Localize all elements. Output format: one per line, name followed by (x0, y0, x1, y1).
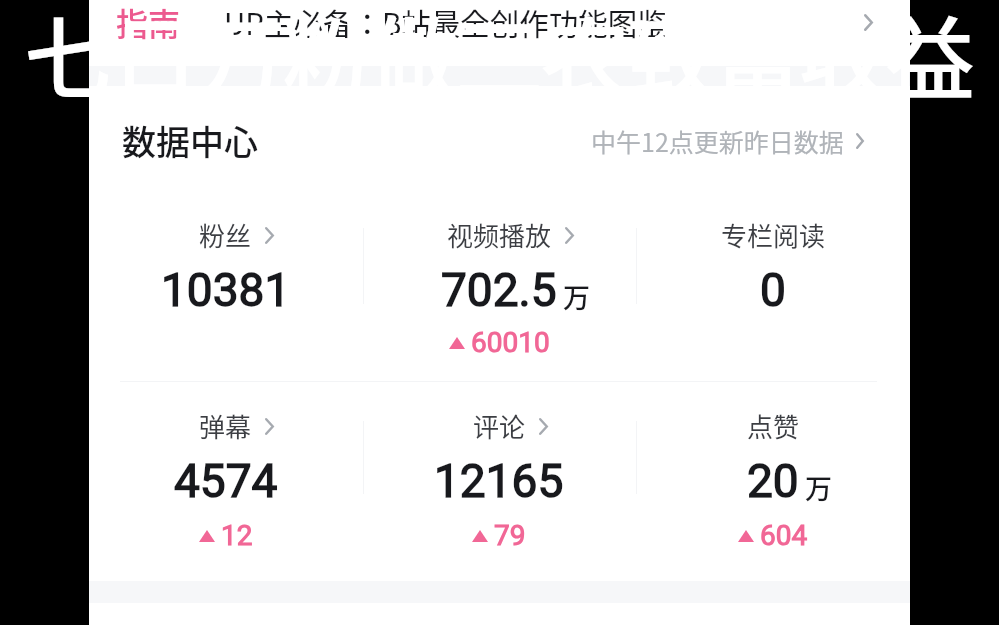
button[interactable]: 评论 (362, 386, 636, 585)
staticText: 12 (221, 519, 253, 552)
button[interactable]: 弹幕 (89, 386, 362, 585)
staticText: 702.5 (441, 263, 557, 317)
staticText: 60010 (471, 326, 550, 359)
staticText: 4574 (174, 454, 278, 508)
staticText: 粉丝 (199, 216, 252, 254)
staticText: 10381 (161, 263, 291, 317)
staticText: 20 (747, 454, 799, 508)
staticText: 12165 (434, 454, 564, 508)
staticText: 点赞 (747, 407, 800, 445)
staticText: 七日万粉做三农致富收益 (24, 0, 999, 118)
staticText: 万 (563, 277, 590, 316)
staticText: 数据中心 (122, 116, 258, 165)
staticText: 79 (494, 519, 526, 552)
staticText: 评论 (473, 407, 526, 445)
button[interactable]: 中午12点更新昨日数据 (591, 123, 864, 159)
button[interactable]: 指南 (89, 0, 910, 66)
button[interactable]: 视频播放 (362, 86, 636, 385)
staticText: 万 (805, 468, 832, 507)
staticText: 中午12点更新昨日数据 (591, 123, 844, 159)
button[interactable]: 点赞 (636, 386, 910, 585)
button[interactable]: 专栏阅读 (636, 86, 910, 385)
button[interactable]: 粉丝 (89, 86, 362, 385)
staticText: 0 (760, 263, 786, 317)
staticText: 专栏阅读 (721, 216, 826, 254)
staticText: 视频播放 (447, 216, 552, 254)
staticText: UP主必备：B站最全创作功能图鉴 (224, 1, 667, 44)
staticText: 604 (760, 519, 808, 552)
staticText: 指南 (116, 0, 181, 45)
staticText: 弹幕 (199, 407, 252, 445)
